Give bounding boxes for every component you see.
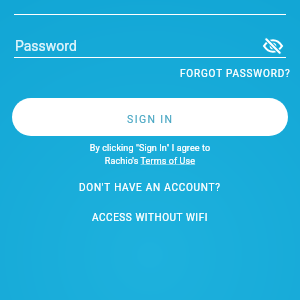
staticText: DON'T HAVE AN ACCOUNT?: [79, 182, 221, 194]
button[interactable]: Show password: [261, 34, 285, 58]
button[interactable]: SIGN IN: [12, 98, 288, 136]
staticText: Password: [15, 38, 77, 54]
button[interactable]: DON'T HAVE AN ACCOUNT?: [67, 176, 233, 200]
staticText: FORGOT PASSWORD?: [180, 68, 291, 80]
staticText: SIGN IN: [127, 113, 174, 125]
staticText: ACCESS WITHOUT WIFI: [92, 212, 208, 224]
button[interactable]: ACCESS WITHOUT WIFI: [80, 206, 220, 230]
button[interactable]: FORGOT PASSWORD?: [172, 63, 299, 85]
staticText: By clicking "Sign In" I agree to Rachio'…: [0, 143, 300, 166]
